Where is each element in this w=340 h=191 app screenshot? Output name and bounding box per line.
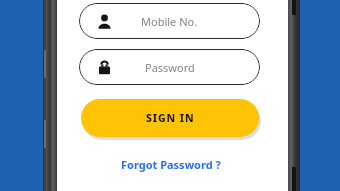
- other: Mobile number: [92, 3, 116, 39]
- button[interactable]: SIGN IN: [81, 99, 259, 137]
- staticText: SIGN IN: [146, 111, 195, 125]
- button[interactable]: Forgot Password ?: [112, 155, 229, 173]
- staticText: Mobile No.: [141, 14, 198, 29]
- staticText: Password: [145, 60, 195, 75]
- button[interactable]: Password: [79, 49, 260, 85]
- other: Password: [92, 49, 116, 85]
- button[interactable]: Mobile No.: [79, 3, 260, 39]
- staticText: Forgot Password ?: [121, 157, 221, 172]
